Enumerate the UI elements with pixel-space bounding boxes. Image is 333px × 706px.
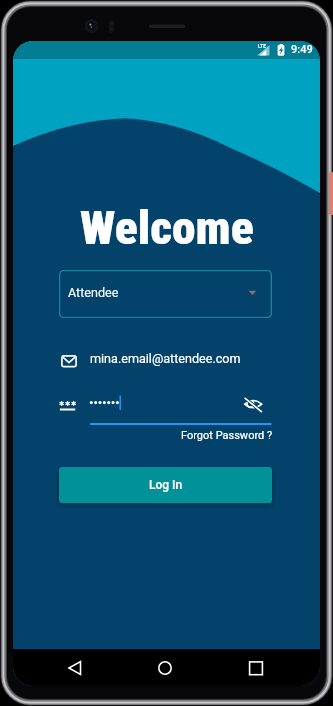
button[interactable]: Log In	[59, 467, 272, 503]
button[interactable]: Forgot Password ?	[181, 429, 273, 442]
staticText: Welcome	[80, 201, 254, 255]
other: Password	[59, 399, 77, 412]
other: Email	[61, 355, 77, 368]
button[interactable]: Recent apps	[237, 649, 275, 686]
staticText: 9:49	[291, 43, 313, 56]
button[interactable]: Attendee	[59, 270, 272, 318]
button[interactable]: Home	[146, 649, 184, 686]
staticText: Log In	[149, 478, 183, 492]
staticText: mina.email@attendee.com	[90, 351, 241, 366]
staticText: LTE	[258, 43, 266, 49]
other: Show password	[244, 397, 263, 413]
staticText: Attendee	[68, 285, 119, 300]
button[interactable]: Back	[56, 649, 94, 686]
